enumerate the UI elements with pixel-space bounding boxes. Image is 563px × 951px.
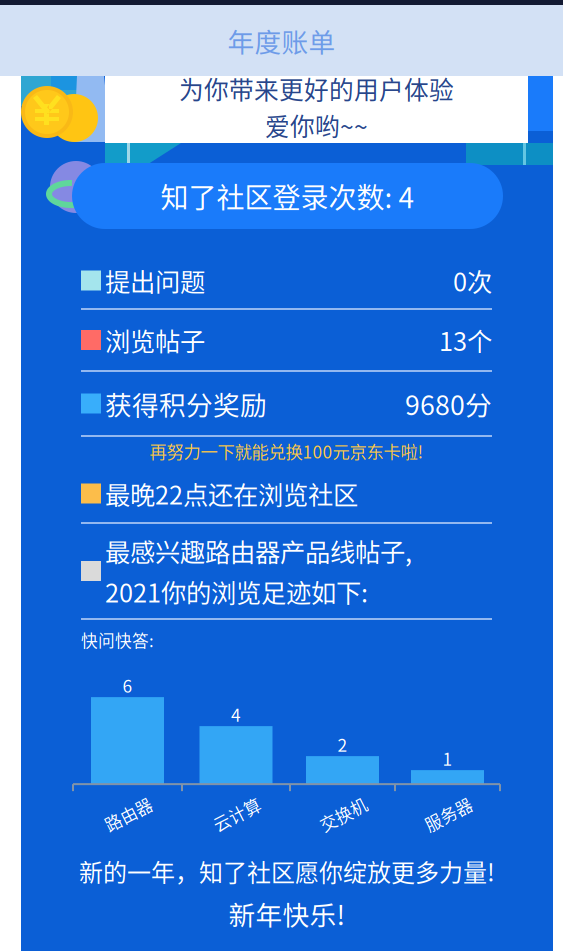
staticText: 提出问题 bbox=[105, 262, 205, 299]
staticText: 为你带来更好的用户体验 bbox=[179, 71, 454, 106]
button[interactable]: 提出问题 bbox=[81, 253, 492, 308]
staticText: 4 bbox=[231, 702, 241, 727]
staticText: 交换机 bbox=[318, 802, 369, 826]
staticText: 新的一年，知了社区愿你绽放更多力量! bbox=[79, 854, 495, 888]
staticText: 浏览帖子 bbox=[105, 322, 205, 358]
staticText: 云计算 bbox=[211, 802, 262, 826]
button[interactable]: 知了社区登录次数: 4 bbox=[72, 163, 503, 229]
staticText: 9680分 bbox=[405, 384, 492, 423]
staticText: 2 bbox=[337, 732, 347, 757]
staticText: 0次 bbox=[453, 262, 492, 299]
staticText: 6 bbox=[122, 673, 132, 698]
staticText: 1 bbox=[442, 746, 452, 771]
staticText: 获得积分奖励 bbox=[105, 384, 267, 423]
staticText: 再努力一下就能兑换100元京东卡啦! bbox=[149, 438, 423, 464]
staticText: 年度账单 bbox=[227, 21, 335, 60]
staticText: 知了社区登录次数: 4 bbox=[160, 176, 414, 216]
staticText: 13个 bbox=[439, 322, 492, 358]
staticText: 最晚22点还在浏览社区 bbox=[105, 475, 358, 512]
staticText: 快问快答: bbox=[81, 628, 154, 652]
button[interactable]: 最感兴趣路由器产品线帖子, bbox=[81, 524, 492, 618]
staticText: 路由器 bbox=[103, 802, 154, 826]
staticText: 最感兴趣路由器产品线帖子, bbox=[105, 532, 412, 569]
staticText: 爱你哟~~ bbox=[265, 107, 368, 143]
staticText: 2021你的浏览足迹如下: bbox=[105, 573, 368, 610]
staticText: 服务器 bbox=[423, 802, 474, 826]
staticText: 新年快乐! bbox=[228, 894, 345, 933]
button[interactable]: 浏览帖子 bbox=[81, 310, 492, 370]
button[interactable]: 最晚22点还在浏览社区 bbox=[81, 465, 492, 522]
button[interactable]: 获得积分奖励 bbox=[81, 372, 492, 435]
